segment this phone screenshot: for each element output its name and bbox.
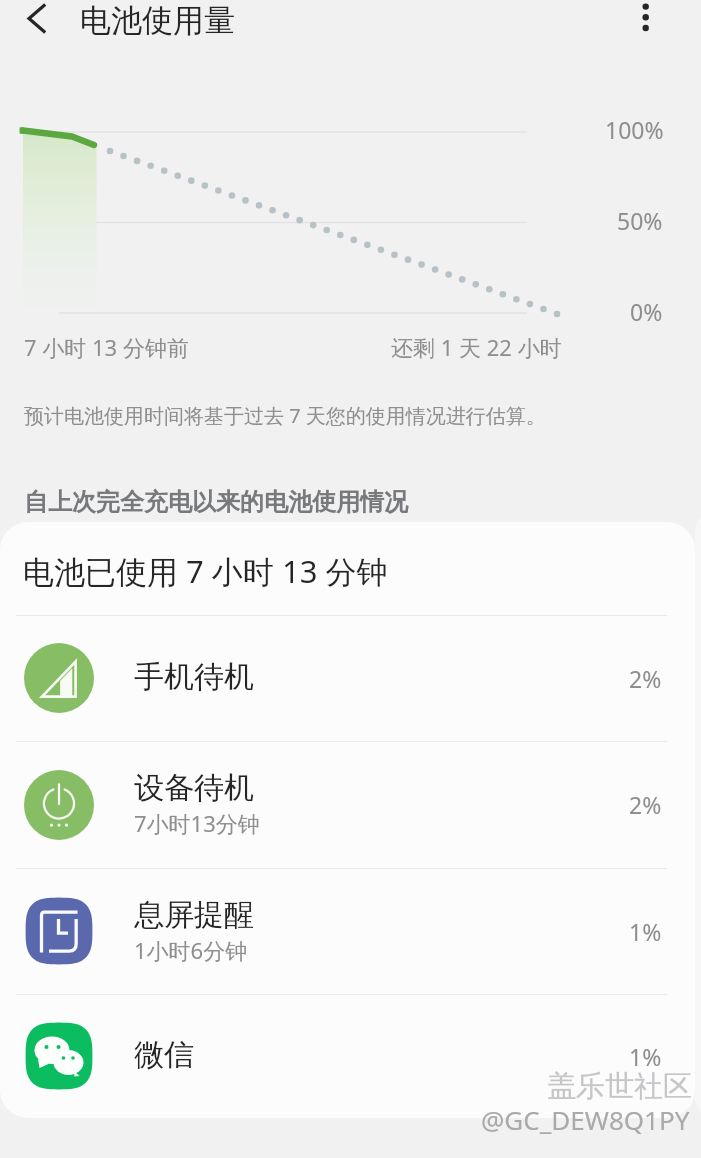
staticText: 50%: [617, 205, 663, 236]
button[interactable]: 息屏提醒: [0, 868, 695, 994]
staticText: 盖乐世社区: [547, 1068, 692, 1105]
button[interactable]: More options: [622, 0, 670, 38]
staticText: 2%: [629, 663, 662, 694]
button[interactable]: 微信: [0, 994, 695, 1118]
button[interactable]: 设备待机: [0, 741, 695, 868]
staticText: 7小时13分钟: [134, 808, 260, 838]
staticText: 1%: [629, 1041, 662, 1072]
staticText: 设备待机: [134, 769, 254, 807]
staticText: 100%: [605, 114, 664, 145]
staticText: 微信: [134, 1036, 194, 1074]
staticText: 1小时6分钟: [134, 935, 248, 965]
staticText: 手机待机: [134, 658, 254, 696]
staticText: 预计电池使用时间将基于过去 7 天您的使用情况进行估算。: [24, 402, 546, 429]
staticText: 自上次完全充电以来的电池使用情况: [24, 487, 408, 517]
staticText: 1%: [629, 916, 662, 947]
staticText: @GC_DEW8Q1PY: [481, 1102, 690, 1137]
button[interactable]: 手机待机: [0, 615, 695, 741]
staticText: 息屏提醒: [134, 896, 254, 934]
staticText: 电池已使用 7 小时 13 分钟: [23, 550, 388, 592]
staticText: 电池使用量: [80, 1, 235, 40]
button[interactable]: Back: [13, 0, 61, 38]
staticText: 2%: [629, 789, 662, 820]
staticText: 还剩 1 天 22 小时: [391, 332, 562, 362]
staticText: 0%: [630, 296, 663, 327]
staticText: 7 小时 13 分钟前: [24, 332, 189, 362]
